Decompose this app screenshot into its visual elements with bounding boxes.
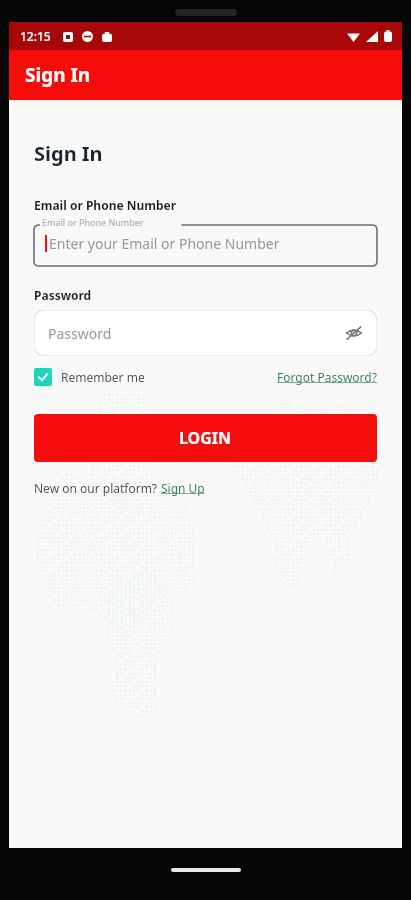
staticText: Enter your Email or Phone Number — [49, 234, 280, 253]
staticText: Password — [34, 287, 92, 303]
staticText: Sign In — [34, 140, 103, 167]
staticText: Email or Phone Number — [42, 216, 144, 228]
staticText: Remember me — [61, 369, 145, 385]
button[interactable]: Email or Phone Number — [34, 220, 377, 266]
staticText: New on our platform? — [34, 480, 158, 496]
button[interactable]: Remember me — [34, 368, 145, 386]
button[interactable]: Show password — [342, 321, 366, 345]
button[interactable]: Password — [34, 310, 377, 356]
staticText: LOGIN — [179, 427, 232, 449]
button[interactable]: Sign Up — [161, 480, 205, 496]
staticText: Email or Phone Number — [34, 197, 177, 213]
button[interactable]: Forgot Password? — [277, 369, 377, 385]
button[interactable]: LOGIN — [34, 414, 377, 462]
staticText: 12:15 — [20, 28, 51, 44]
staticText: Password — [48, 324, 112, 343]
staticText: Sign In — [25, 62, 91, 88]
